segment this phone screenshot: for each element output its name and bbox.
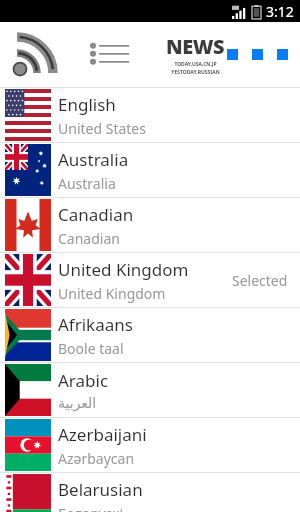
staticText: Australia [58, 174, 116, 193]
staticText: United Kingdom [58, 284, 166, 303]
staticText: Australia [58, 148, 129, 171]
staticText: Canadian [58, 229, 120, 248]
staticText: العربية [58, 395, 97, 411]
staticText: Canadian [58, 203, 134, 226]
staticText: Selected [232, 271, 288, 290]
button[interactable]: Belarusian [0, 473, 300, 512]
staticText: Беларускі [58, 504, 124, 512]
button[interactable]: RSS feeds [5, 26, 63, 84]
button[interactable]: English [0, 88, 300, 143]
button[interactable]: Australia [0, 143, 300, 198]
staticText: 3:12 [266, 2, 294, 21]
staticText: Afrikaans [58, 313, 133, 336]
button[interactable]: Afrikaans [0, 308, 300, 363]
staticText: NEWS [166, 33, 224, 60]
button[interactable]: List [88, 35, 132, 75]
button[interactable]: NEWS [162, 33, 228, 76]
staticText: English [58, 93, 116, 116]
button[interactable]: More options [223, 39, 292, 70]
staticText: YESTODAY,RUSSIAN [171, 69, 220, 76]
staticText: Azerbaijani [58, 423, 147, 446]
staticText: United States [58, 119, 146, 138]
button[interactable]: Azerbaijani [0, 418, 300, 473]
staticText: Belarusian [58, 478, 143, 501]
staticText: TODAY,USA,CN,JP [174, 61, 217, 68]
button[interactable]: United Kingdom [0, 253, 300, 308]
staticText: Azərbaycan [58, 449, 135, 468]
staticText: United Kingdom [58, 258, 189, 281]
staticText: Boole taal [58, 339, 124, 358]
button[interactable]: Arabic [0, 363, 300, 418]
button[interactable]: Canadian [0, 198, 300, 253]
staticText: Arabic [58, 369, 109, 392]
